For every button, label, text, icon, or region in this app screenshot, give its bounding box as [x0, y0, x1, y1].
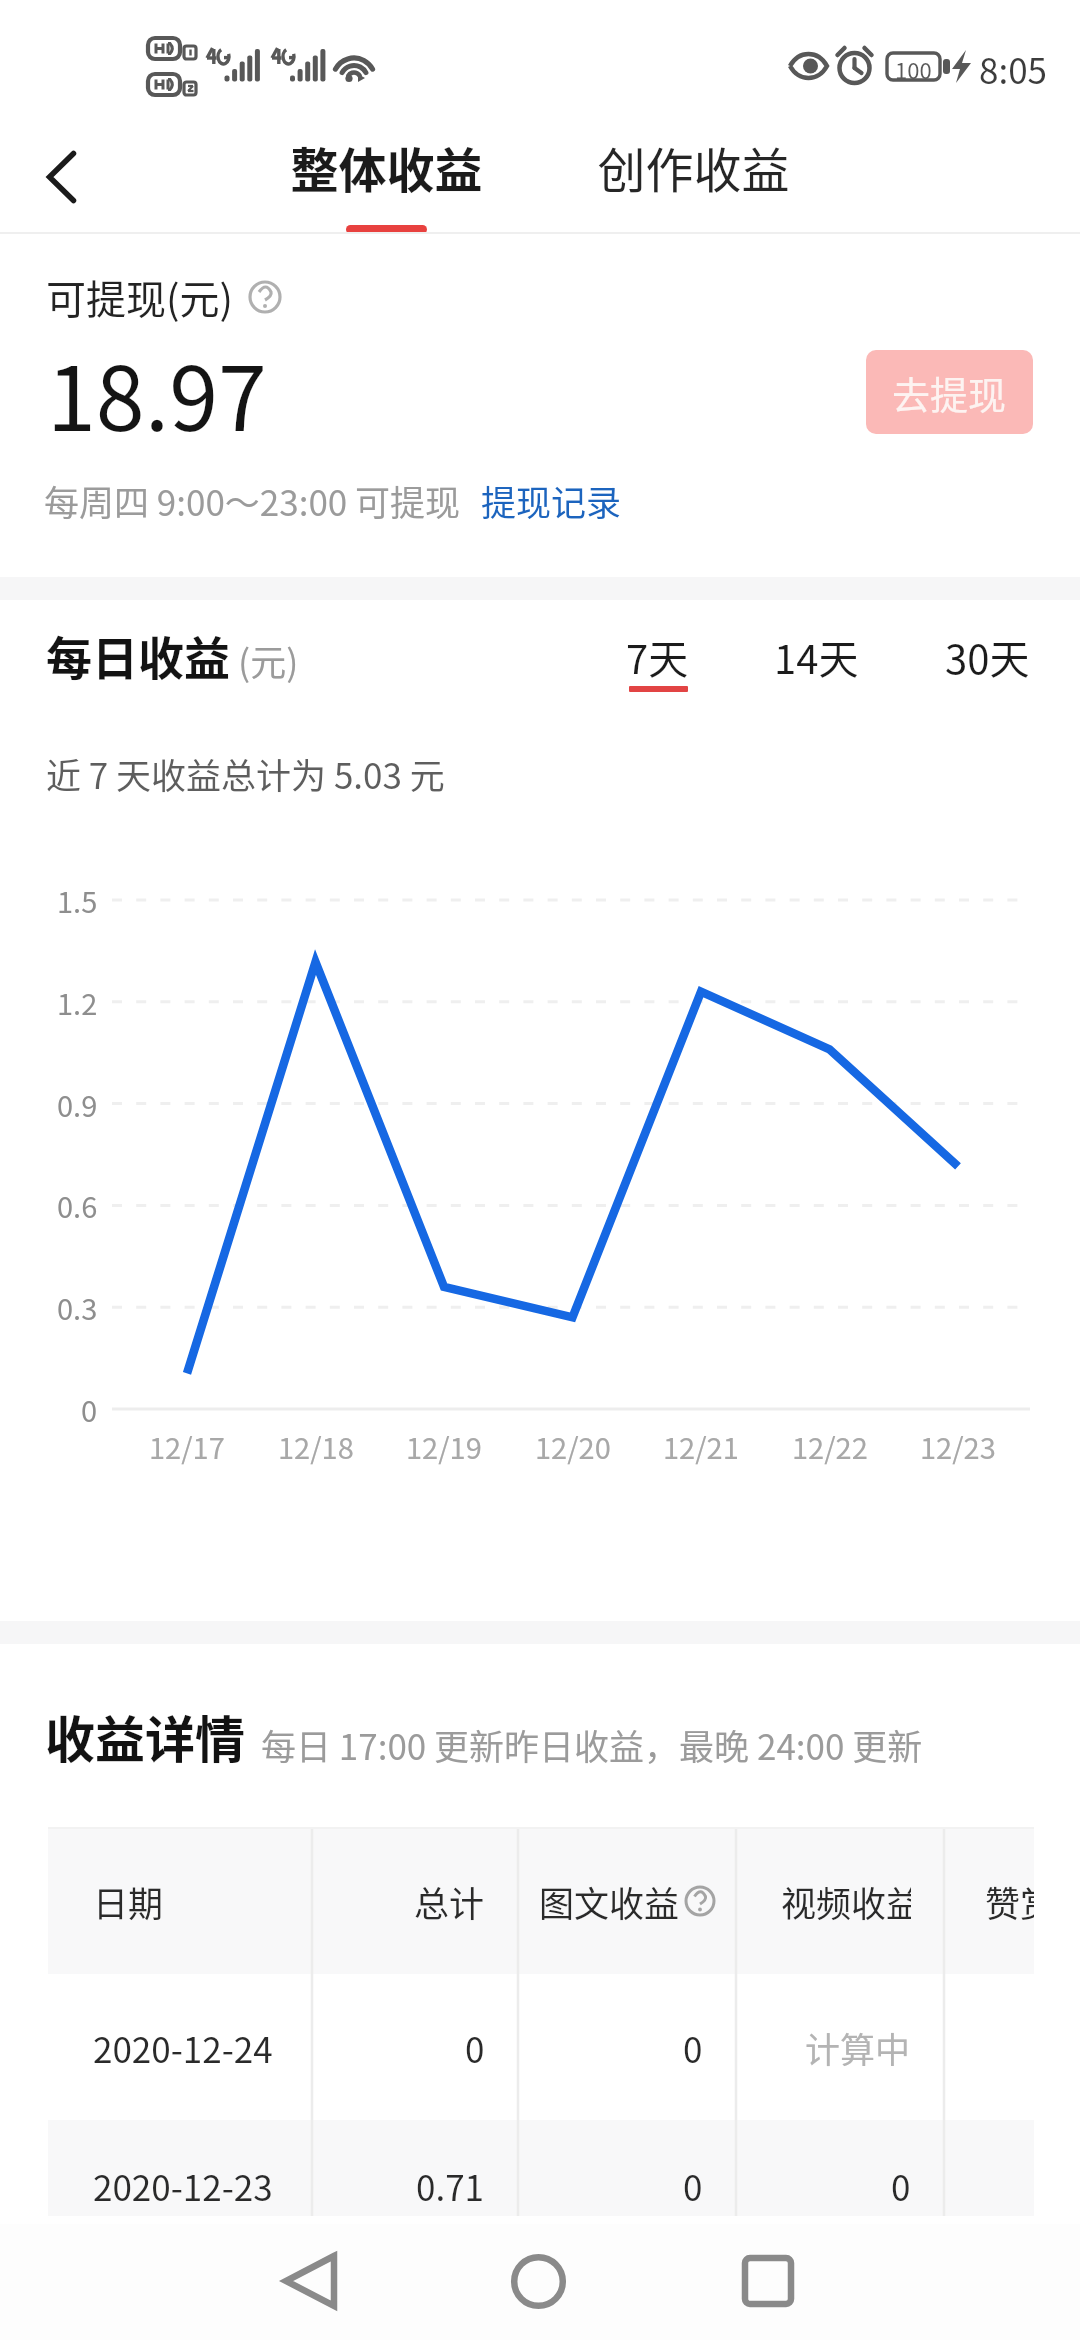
staticText: 计算中 [805, 2022, 911, 2073]
staticText: 12/23 [920, 1425, 996, 1467]
button[interactable]: 30天 [925, 616, 1049, 704]
staticText: 日期 [93, 1876, 164, 1927]
staticText: 0 [465, 2022, 485, 2073]
staticText: 14天 [774, 628, 859, 686]
button[interactable]: 14天 [754, 616, 878, 704]
staticText: 每日 17:00 更新昨日收益，最晚 24:00 更新 [261, 1719, 923, 1770]
staticText: 可提现(元) [46, 268, 234, 326]
staticText: 0 [683, 2022, 703, 2073]
button[interactable]: 整体收益 [278, 114, 494, 228]
staticText: 12/19 [406, 1425, 482, 1467]
staticText: 12/21 [663, 1425, 739, 1467]
staticText: 30天 [945, 628, 1030, 686]
button[interactable]: Back [17, 132, 106, 222]
staticText: 0 [683, 2160, 703, 2211]
staticText: 0 [81, 1388, 98, 1430]
staticText: 去提现 [892, 365, 1007, 420]
staticText: 2020-12-23 [93, 2160, 273, 2211]
staticText: 创作收益 [597, 132, 790, 202]
button[interactable]: Back [250, 2231, 370, 2331]
staticText: 2020-12-24 [93, 2022, 273, 2073]
staticText: 12/18 [278, 1425, 354, 1467]
staticText: 收益详情 [45, 1700, 245, 1772]
staticText: 100 [895, 53, 932, 80]
staticText: (元) [238, 634, 299, 686]
staticText: 图文收益 [539, 1876, 680, 1927]
staticText: 每周四 9:00～23:00 可提现 [44, 475, 461, 526]
button[interactable]: 创作收益 [585, 114, 801, 228]
staticText: 0.6 [57, 1184, 98, 1226]
staticText: 0.9 [57, 1083, 98, 1125]
staticText: 赞赏 [985, 1876, 1034, 1927]
staticText: 提现记录 [481, 475, 622, 526]
staticText: 总计 [414, 1876, 485, 1927]
staticText: 12/17 [149, 1425, 225, 1467]
staticText: 0.71 [416, 2160, 485, 2211]
staticText: 1.5 [57, 879, 98, 921]
staticText: 8:05 [979, 43, 1048, 94]
staticText: 近 7 天收益总计为 5.03 元 [46, 748, 445, 799]
button[interactable]: 去提现 [866, 350, 1033, 434]
staticText: 18.97 [47, 329, 267, 456]
staticText: 12/22 [792, 1425, 868, 1467]
staticText: 每日收益 [46, 622, 230, 689]
staticText: 0 [891, 2160, 911, 2211]
button[interactable]: Recent apps [708, 2231, 828, 2331]
button[interactable]: 提现记录 [481, 467, 622, 534]
staticText: 1.2 [57, 981, 98, 1023]
staticText: 7天 [626, 628, 689, 686]
staticText: 整体收益 [290, 132, 483, 202]
staticText: 视频收益 [781, 1876, 911, 1927]
staticText: 0.3 [57, 1286, 98, 1328]
staticText: 12/20 [535, 1425, 611, 1467]
button[interactable]: 7天 [612, 616, 702, 704]
button[interactable]: Home [478, 2231, 598, 2331]
